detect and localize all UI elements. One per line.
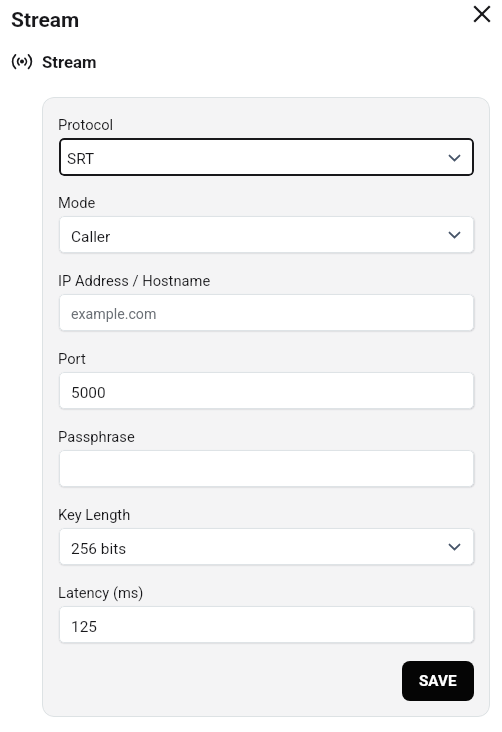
button[interactable]: Mode: [59, 216, 474, 253]
staticText: IP Address / Hostname: [58, 272, 211, 289]
button[interactable]: Passphrase: [59, 450, 474, 487]
staticText: SAVE: [419, 672, 457, 690]
staticText: Stream: [11, 8, 80, 33]
staticText: Caller: [71, 228, 111, 246]
staticText: Latency (ms): [58, 584, 144, 601]
staticText: 5000: [71, 384, 106, 402]
button[interactable]: Latency (ms): [59, 606, 474, 643]
button[interactable]: SAVE: [402, 661, 474, 701]
staticText: Key Length: [58, 506, 131, 523]
staticText: Mode: [58, 194, 96, 211]
staticText: example.com: [71, 306, 157, 323]
staticText: Protocol: [58, 116, 114, 133]
staticText: Passphrase: [58, 428, 135, 445]
button[interactable]: Protocol: [59, 138, 474, 176]
button[interactable]: Close: [465, 0, 499, 31]
staticText: SRT: [67, 150, 95, 168]
staticText: Stream: [42, 52, 97, 72]
staticText: 125: [71, 618, 97, 636]
staticText: 256 bits: [71, 540, 127, 558]
button[interactable]: Key Length: [59, 528, 474, 565]
button[interactable]: IP Address / Hostname: [59, 294, 474, 331]
staticText: Port: [58, 350, 86, 367]
button[interactable]: Port: [59, 372, 474, 409]
